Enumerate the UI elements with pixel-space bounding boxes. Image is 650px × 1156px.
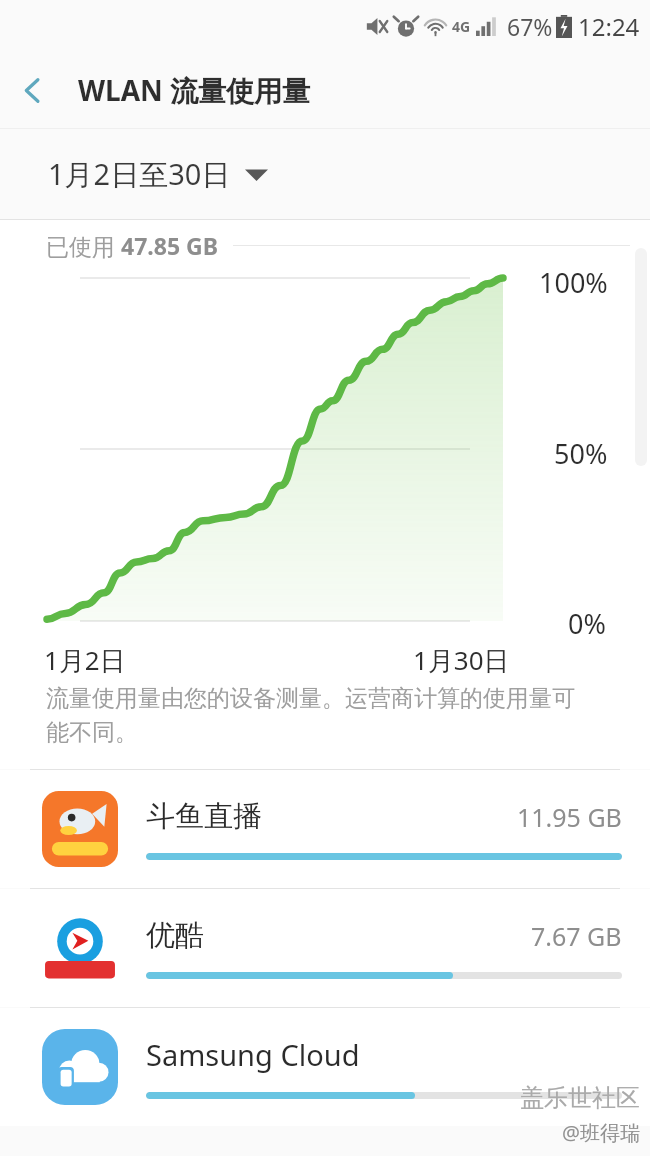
staticText: 已使用 xyxy=(46,230,121,261)
button[interactable]: 1月2日至30日 xyxy=(0,129,650,219)
staticText: 1月30日 xyxy=(413,642,510,678)
staticText: @班得瑞 xyxy=(562,1119,640,1146)
button[interactable]: 斗鱼直播 xyxy=(0,770,650,888)
staticText: 7.67 GB xyxy=(531,919,622,953)
button[interactable]: Back xyxy=(0,58,64,122)
button[interactable]: 优酷 xyxy=(0,889,650,1007)
staticText: 12:24 xyxy=(578,10,640,43)
staticText: 流量使用量由您的设备测量。运营商计算的使用量可能不同。 xyxy=(46,684,594,747)
staticText: 50% xyxy=(554,435,608,472)
staticText: 11.95 GB xyxy=(517,800,622,834)
staticText: 优酷 xyxy=(146,917,204,954)
staticText: 盖乐世社区 xyxy=(520,1083,640,1113)
staticText: WLAN 流量使用量 xyxy=(78,71,311,109)
staticText: 100% xyxy=(539,264,608,301)
staticText: 1月2日至30日 xyxy=(48,154,231,194)
staticText: 47.85 GB xyxy=(121,230,219,261)
staticText: 4G xyxy=(452,17,471,36)
staticText: Samsung Cloud xyxy=(146,1035,360,1074)
staticText: 斗鱼直播 xyxy=(146,798,262,835)
staticText: 1月2日 xyxy=(44,642,126,678)
staticText: 0% xyxy=(568,605,606,642)
button[interactable]: Samsung Cloud xyxy=(0,1008,650,1126)
staticText: 67% xyxy=(507,11,553,42)
